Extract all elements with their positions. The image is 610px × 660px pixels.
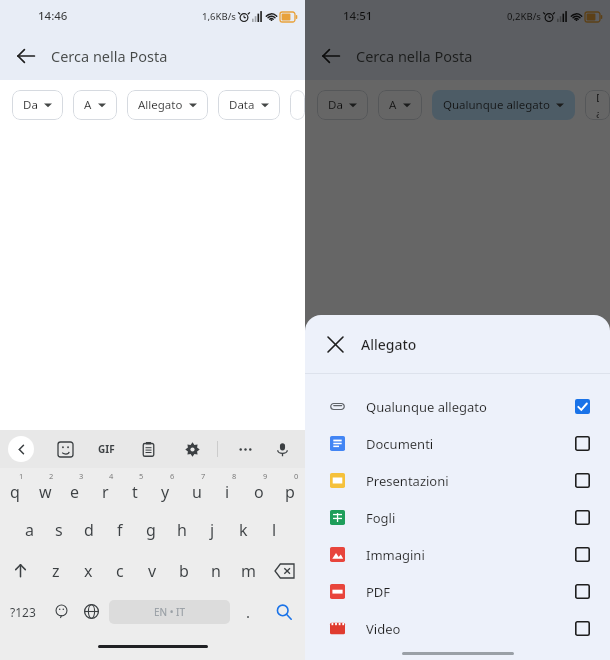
staticText: 3 <box>79 471 84 481</box>
staticText: q <box>10 481 20 503</box>
button[interactable]: t <box>120 468 150 509</box>
button[interactable]: j <box>197 509 228 550</box>
button[interactable]: m <box>232 550 264 591</box>
button[interactable]: Back <box>8 436 34 462</box>
staticText: d <box>84 519 94 541</box>
staticText: . <box>246 602 251 622</box>
staticText: A <box>84 97 92 113</box>
button[interactable]: e <box>60 468 90 509</box>
button[interactable]: ?123 <box>0 591 46 632</box>
button[interactable]: l <box>259 509 290 550</box>
button[interactable]: o <box>243 468 274 509</box>
button[interactable]: q <box>0 468 30 509</box>
button[interactable]: p <box>274 468 305 509</box>
button[interactable]: Sticker <box>54 438 76 460</box>
button[interactable]: b <box>168 550 200 591</box>
button[interactable]: Emoji <box>46 591 76 632</box>
staticText: t <box>132 481 138 503</box>
button[interactable]: Voice input <box>271 438 293 460</box>
button[interactable]: Fogli <box>305 499 610 536</box>
staticText: ?123 <box>10 604 36 620</box>
button[interactable]: Data <box>585 90 610 120</box>
staticText: 4 <box>109 471 114 481</box>
button[interactable]: y <box>150 468 181 509</box>
button[interactable]: EN • IT <box>109 600 230 624</box>
button[interactable]: Shift <box>0 550 40 591</box>
button[interactable]: x <box>72 550 104 591</box>
button[interactable]: Presentazioni <box>305 462 610 499</box>
button[interactable]: u <box>181 468 212 509</box>
button[interactable]: k <box>228 509 259 550</box>
button[interactable]: Da <box>12 90 63 120</box>
button[interactable]: w <box>30 468 60 509</box>
button[interactable]: Back <box>6 36 46 76</box>
button[interactable]: Da leg <box>290 90 305 120</box>
staticText: h <box>177 519 187 541</box>
staticText: 1,6KB/s <box>202 10 236 23</box>
staticText: e <box>70 481 80 503</box>
staticText: 8 <box>232 471 237 481</box>
button[interactable]: Change language <box>76 591 106 632</box>
staticText: Cerca nella Posta <box>356 46 473 66</box>
staticText: 1 <box>19 471 24 481</box>
staticText: 14:46 <box>38 8 68 24</box>
button[interactable]: GIF <box>98 442 115 456</box>
button[interactable]: a <box>14 509 44 550</box>
button[interactable]: g <box>135 509 166 550</box>
staticText: 5 <box>139 471 144 481</box>
staticText: Fogli <box>366 509 396 527</box>
staticText: 7 <box>201 471 206 481</box>
staticText: A <box>389 97 397 113</box>
button[interactable]: Qualunque allegato <box>432 90 575 120</box>
button[interactable]: Clipboard <box>137 438 159 460</box>
button[interactable]: d <box>74 509 104 550</box>
button[interactable]: PDF <box>305 573 610 610</box>
staticText: Data <box>596 90 599 120</box>
button[interactable]: r <box>90 468 120 509</box>
button[interactable]: f <box>104 509 135 550</box>
button[interactable]: Backspace <box>264 550 305 591</box>
button[interactable]: Da <box>317 90 368 120</box>
staticText: s <box>55 519 63 541</box>
button[interactable]: i <box>212 468 243 509</box>
staticText: EN • IT <box>154 605 186 619</box>
button[interactable]: Search <box>263 591 305 632</box>
button[interactable]: c <box>104 550 136 591</box>
staticText: 2 <box>49 471 54 481</box>
staticText: Cerca nella Posta <box>51 46 168 66</box>
staticText: Allegato <box>361 335 417 354</box>
staticText: 6 <box>170 471 175 481</box>
button[interactable]: Qualunque allegato <box>305 388 610 425</box>
button[interactable]: Video <box>305 610 610 647</box>
staticText: n <box>211 560 221 582</box>
staticText: Video <box>366 620 401 638</box>
button[interactable]: Back <box>311 36 351 76</box>
button[interactable]: A <box>73 90 117 120</box>
button[interactable]: Data <box>218 90 280 120</box>
staticText: Presentazioni <box>366 472 449 490</box>
button[interactable]: A <box>378 90 422 120</box>
button[interactable]: v <box>136 550 168 591</box>
button[interactable]: More <box>234 438 256 460</box>
button[interactable]: z <box>40 550 72 591</box>
staticText: 9 <box>263 471 268 481</box>
button[interactable]: s <box>44 509 74 550</box>
button[interactable]: . <box>233 591 263 632</box>
staticText: j <box>210 519 215 541</box>
staticText: a <box>25 519 34 541</box>
staticText: o <box>254 481 264 503</box>
staticText: i <box>225 481 230 503</box>
button[interactable]: n <box>200 550 232 591</box>
staticText: 14:51 <box>343 8 373 24</box>
staticText: Qualunque allegato <box>366 398 487 416</box>
button[interactable]: Documenti <box>305 425 610 462</box>
staticText: GIF <box>98 442 115 456</box>
staticText: Documenti <box>366 435 434 453</box>
button[interactable]: Settings <box>181 438 203 460</box>
staticText: Da <box>23 97 38 113</box>
button[interactable]: Close <box>317 326 353 362</box>
button[interactable]: Allegato <box>127 90 208 120</box>
staticText: z <box>52 560 60 582</box>
button[interactable]: h <box>166 509 197 550</box>
button[interactable]: Immagini <box>305 536 610 573</box>
